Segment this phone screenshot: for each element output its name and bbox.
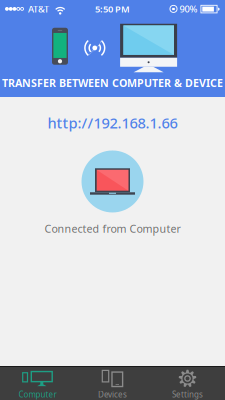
staticText: Connected from Computer: [44, 221, 180, 236]
button[interactable]: Settings: [150, 367, 225, 400]
staticText: http://192.168.1.66: [47, 113, 177, 132]
staticText: TRANSFER BETWEEN COMPUTER & DEVICE: [2, 76, 223, 90]
button[interactable]: Devices: [75, 367, 150, 400]
staticText: AT&T: [28, 3, 49, 15]
staticText: 90%: [179, 3, 197, 15]
button[interactable]: http://192.168.1.66: [47, 113, 177, 132]
staticText: Devices: [98, 389, 127, 400]
staticText: Settings: [172, 389, 203, 400]
staticText: 5:50 PM: [95, 3, 130, 15]
staticText: Computer: [18, 389, 56, 400]
button[interactable]: Computer: [0, 367, 75, 400]
